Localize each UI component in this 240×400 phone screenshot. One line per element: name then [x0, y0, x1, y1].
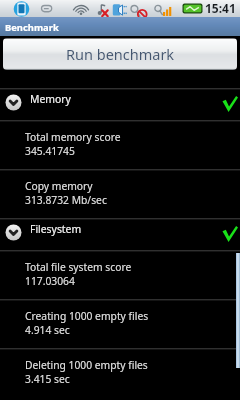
- staticText: Creating 1000 empty files 4.914 sec: [25, 309, 149, 337]
- button[interactable]: Total memory score 345.41745: [0, 122, 240, 169]
- button[interactable]: Copy memory 313.8732 Mb/sec: [0, 171, 240, 218]
- staticText: Benchmark: [5, 21, 59, 34]
- staticText: Filesystem: [30, 222, 82, 236]
- staticText: Deleting 1000 empty files 3.415 sec: [25, 358, 148, 386]
- button[interactable]: Memory: [0, 90, 240, 120]
- staticText: 15:41: [205, 0, 236, 16]
- staticText: Total memory score 345.41745: [25, 130, 121, 158]
- button[interactable]: Deleting 1000 empty files 3.415 sec: [0, 350, 240, 397]
- staticText: Copy memory 313.8732 Mb/sec: [25, 179, 107, 207]
- staticText: Total file system score 117.03064: [25, 260, 132, 288]
- staticText: Memory: [30, 92, 71, 106]
- button[interactable]: Filesystem: [0, 220, 240, 250]
- staticText: Run benchmark: [66, 44, 175, 64]
- button[interactable]: Creating 1000 empty files 4.914 sec: [0, 301, 240, 348]
- button[interactable]: Run benchmark: [3, 38, 237, 70]
- button[interactable]: Total file system score 117.03064: [0, 252, 240, 299]
